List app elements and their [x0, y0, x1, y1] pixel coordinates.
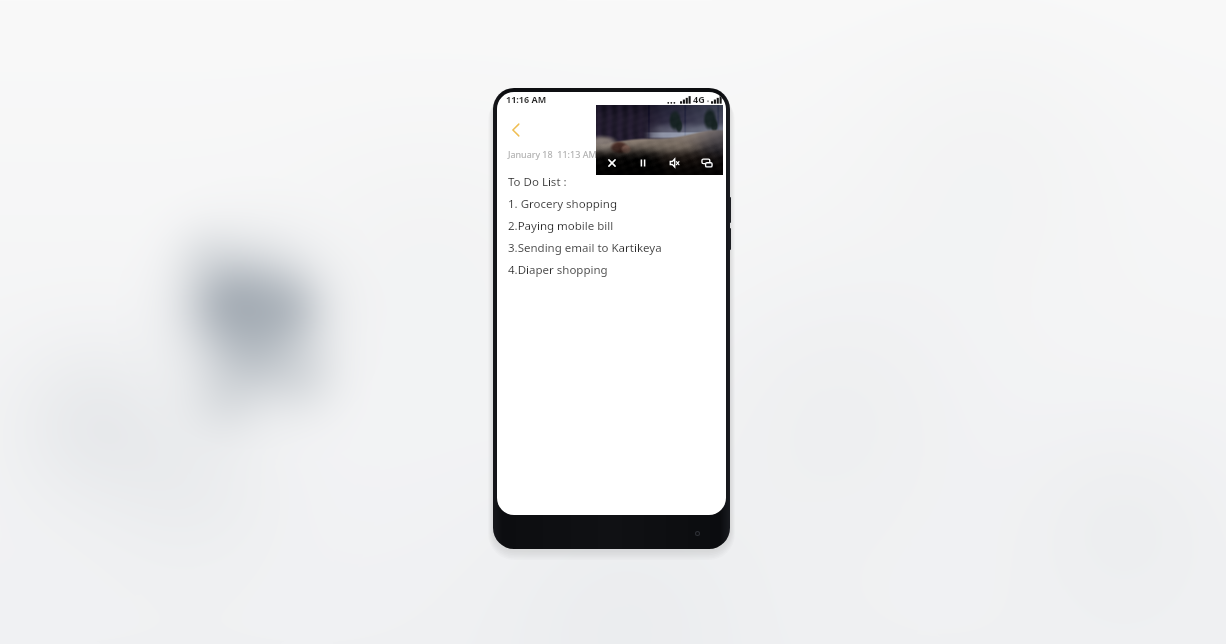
staticText: 4G	[693, 93, 705, 105]
staticText: To Do List :	[508, 174, 567, 190]
staticText: 11:16 AM	[506, 93, 547, 105]
staticText: 4.Diaper shopping	[508, 262, 608, 278]
button[interactable]: Picture in picture	[691, 151, 723, 175]
button[interactable]: Mute	[659, 151, 691, 175]
button[interactable]: Picture-in-picture video player	[596, 105, 723, 175]
button[interactable]: To Do List :	[497, 174, 726, 515]
staticText: January 18 11:13 AM	[508, 148, 597, 160]
staticText: 2.Paying mobile bill	[508, 218, 614, 234]
staticText: 3.Sending email to Kartikeya	[508, 240, 662, 256]
button[interactable]: Pause	[627, 151, 659, 175]
button[interactable]: Close	[596, 151, 627, 175]
button[interactable]: Back	[504, 118, 528, 142]
staticText: 1. Grocery shopping	[508, 196, 617, 212]
